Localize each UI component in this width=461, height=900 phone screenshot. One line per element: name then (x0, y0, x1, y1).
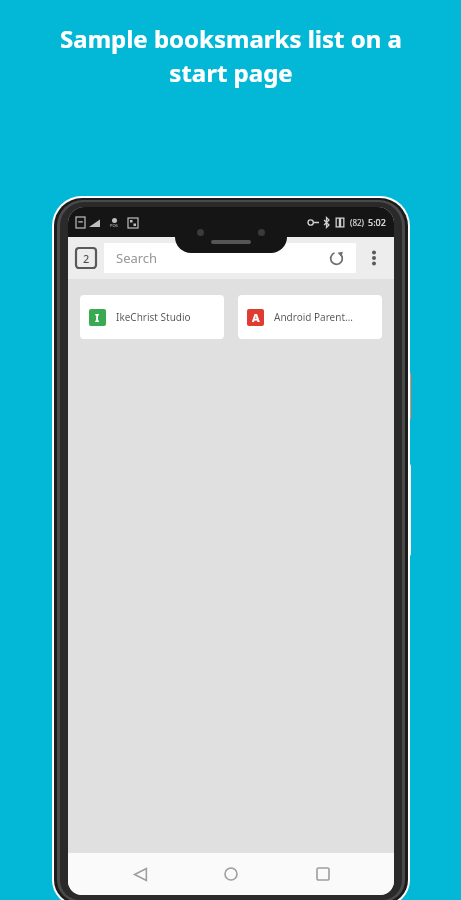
staticText: PO6 (110, 223, 118, 228)
button[interactable]: Search (104, 243, 356, 273)
staticText: (82) (350, 217, 364, 228)
button[interactable]: Tabs (76, 248, 96, 268)
button[interactable]: I (80, 295, 224, 339)
staticText: 5:02 (368, 216, 386, 228)
staticText: Search (116, 249, 329, 267)
button[interactable]: Recent apps (303, 854, 343, 894)
other: Reload (329, 251, 344, 266)
staticText: Sample booksmarks list on a start page (60, 22, 402, 90)
staticText: A (252, 310, 260, 325)
button[interactable]: A (238, 295, 382, 339)
button[interactable]: Back (120, 854, 160, 894)
staticText: I (95, 310, 100, 325)
staticText: 2 (83, 251, 90, 266)
staticText: Android Parent… (274, 310, 353, 324)
button[interactable]: Home (211, 854, 251, 894)
button[interactable]: More options (362, 246, 386, 270)
staticText: IkeChrist Studio (116, 310, 191, 324)
